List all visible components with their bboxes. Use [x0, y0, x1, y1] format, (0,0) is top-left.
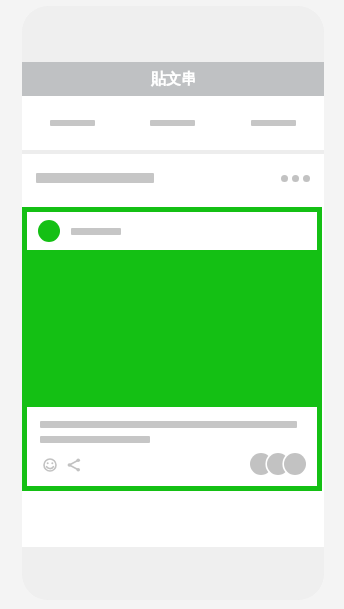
- button[interactable]: Like: [37, 452, 63, 478]
- staticText: 貼文串: [151, 70, 196, 89]
- button[interactable]: Reactions: [248, 451, 310, 477]
- button[interactable]: Like: [22, 207, 322, 491]
- button[interactable]: [223, 96, 324, 150]
- button[interactable]: [122, 96, 223, 150]
- button[interactable]: More options: [277, 171, 314, 186]
- button[interactable]: Share: [61, 452, 87, 478]
- button[interactable]: 貼文串: [22, 62, 324, 96]
- button[interactable]: [22, 96, 122, 150]
